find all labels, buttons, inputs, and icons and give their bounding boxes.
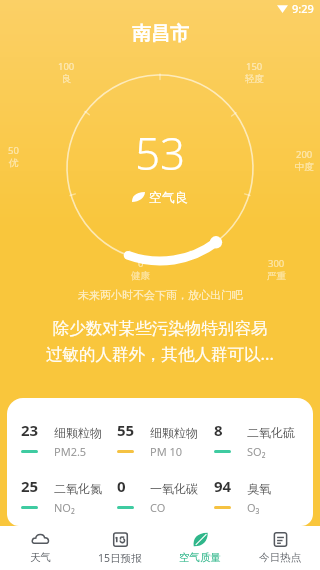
staticText: 300 — [268, 257, 285, 270]
button[interactable]: 今日热点 — [240, 526, 320, 570]
staticText: 53 — [135, 123, 186, 183]
button[interactable]: 25 — [17, 476, 113, 515]
staticText: O₃ — [247, 500, 260, 515]
staticText: 0 — [138, 257, 144, 270]
staticText: 空气良 — [149, 189, 188, 205]
staticText: 中度 — [295, 161, 314, 173]
staticText: 150 — [246, 60, 263, 73]
button[interactable]: 15日预报 — [80, 526, 160, 570]
staticText: 南昌市 — [132, 22, 189, 46]
staticText: 健康 — [131, 270, 150, 282]
staticText: 50 — [8, 144, 19, 157]
staticText: 0 — [117, 476, 126, 496]
staticText: 今日热点 — [259, 551, 301, 564]
staticText: 55 — [117, 420, 135, 440]
staticText: 优 — [9, 157, 19, 169]
staticText: 25 — [21, 476, 39, 496]
staticText: 一氧化碳 — [150, 481, 198, 496]
staticText: 轻度 — [245, 73, 264, 85]
staticText: 100 — [58, 60, 75, 73]
staticText: 15日预报 — [98, 551, 142, 565]
staticText: 9:29 — [292, 1, 314, 16]
staticText: 二氧化硫 — [247, 425, 295, 440]
button[interactable]: 8 — [210, 420, 307, 459]
staticText: 细颗粒物 — [54, 425, 102, 440]
staticText: NO₂ — [54, 500, 75, 515]
button[interactable]: 55 — [113, 420, 210, 459]
button[interactable]: 23 — [17, 420, 113, 459]
staticText: 天气 — [30, 551, 51, 564]
button[interactable]: 空气质量 — [160, 526, 240, 570]
staticText: PM 10 — [150, 444, 183, 459]
staticText: 未来两小时不会下雨，放心出门吧 — [78, 288, 243, 302]
staticText: 8 — [214, 420, 223, 440]
staticText: 二氧化氮 — [54, 481, 102, 496]
button[interactable]: 0 — [113, 476, 210, 515]
staticText: 空气质量 — [179, 551, 221, 564]
staticText: CO — [150, 500, 166, 515]
staticText: 严重 — [267, 270, 286, 282]
button[interactable]: 94 — [210, 476, 307, 515]
staticText: SO₂ — [247, 444, 266, 459]
staticText: 23 — [21, 420, 39, 440]
staticText: 良 — [62, 73, 72, 85]
staticText: 臭氧 — [247, 481, 271, 496]
staticText: 细颗粒物 — [150, 425, 198, 440]
staticText: PM2.5 — [54, 444, 87, 459]
button[interactable]: 天气 — [0, 526, 80, 570]
staticText: 94 — [214, 476, 232, 496]
staticText: 200 — [296, 148, 313, 161]
staticText: 除少数对某些污染物特别容易 过敏的人群外，其他人群可以... — [46, 318, 274, 365]
